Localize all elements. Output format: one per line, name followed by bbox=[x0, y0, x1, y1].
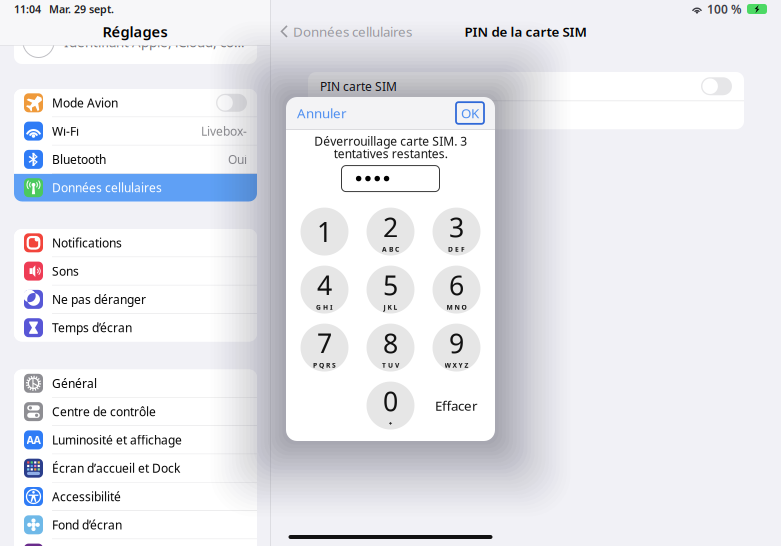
button[interactable]: 1 bbox=[300, 208, 348, 256]
staticText: Accessibilité bbox=[52, 488, 121, 504]
staticText: Wi-Fi bbox=[52, 123, 79, 139]
staticText: PIN carte SIM bbox=[320, 78, 397, 94]
staticText: 2 bbox=[383, 209, 398, 245]
staticText: Notifications bbox=[52, 235, 122, 251]
staticText: Identifiant Apple, iCloud, contenu multi… bbox=[64, 33, 247, 51]
button[interactable]: OK bbox=[456, 102, 484, 124]
staticText: OK bbox=[461, 104, 479, 122]
button[interactable]: Annuler bbox=[297, 100, 353, 126]
staticText: Annuler bbox=[297, 104, 347, 122]
staticText: Effacer bbox=[435, 397, 478, 414]
staticText: 1 bbox=[317, 214, 332, 249]
staticText: + bbox=[388, 419, 392, 428]
staticText: Luminosité et affichage bbox=[52, 432, 182, 448]
staticText: Mode Avion bbox=[52, 95, 118, 111]
staticText: D E F bbox=[448, 245, 465, 254]
staticText: Oui bbox=[228, 151, 247, 167]
staticText: J K L bbox=[383, 303, 397, 312]
button[interactable]: Notifications bbox=[14, 229, 257, 257]
button[interactable]: Écran d’accueil et Dock bbox=[14, 454, 257, 482]
button[interactable]: 7 bbox=[300, 324, 348, 372]
staticText: P Q R S bbox=[313, 361, 336, 370]
button[interactable]: 6 bbox=[432, 266, 480, 314]
staticText: 9 bbox=[449, 325, 464, 361]
button[interactable]: 4 bbox=[300, 266, 348, 314]
button[interactable]: Données cellulaires bbox=[14, 174, 257, 201]
button[interactable]: Ne pas déranger bbox=[14, 286, 257, 313]
staticText: Ne pas déranger bbox=[52, 291, 146, 307]
staticText: AA bbox=[26, 433, 40, 447]
staticText: Bluetooth bbox=[52, 151, 106, 167]
staticText: Données cellulaires bbox=[293, 23, 412, 40]
staticText: M N O bbox=[446, 303, 466, 312]
staticText: Données cellulaires bbox=[52, 180, 162, 196]
button[interactable]: AA bbox=[14, 426, 257, 454]
staticText: Livebox- bbox=[201, 123, 247, 139]
staticText: Mar. 29 sept. bbox=[49, 2, 114, 16]
staticText: A B C bbox=[382, 245, 399, 254]
button[interactable]: 9 bbox=[432, 324, 480, 372]
staticText: S bbox=[29, 543, 37, 546]
button[interactable]: 8 bbox=[366, 324, 414, 372]
staticText: 5 bbox=[383, 267, 398, 303]
staticText: Fond d’écran bbox=[52, 517, 122, 533]
staticText: Général bbox=[52, 375, 97, 391]
staticText: Centre de contrôle bbox=[52, 404, 156, 419]
staticText: G H I bbox=[316, 303, 333, 312]
staticText: Écran d’accueil et Dock bbox=[52, 460, 180, 476]
button[interactable]: Temps d’écran bbox=[14, 314, 257, 341]
staticText: W X Y Z bbox=[444, 361, 468, 370]
staticText: 6 bbox=[449, 267, 464, 303]
staticText: PIN de la carte SIM bbox=[464, 23, 586, 40]
staticText: Sons bbox=[52, 263, 79, 279]
button[interactable]: Accessibilité bbox=[14, 483, 257, 510]
staticText: 3 bbox=[449, 209, 464, 245]
button[interactable]: Centre de contrôle bbox=[14, 398, 257, 425]
button[interactable]: Fond d’écran bbox=[14, 511, 257, 539]
staticText: 11:04 bbox=[14, 2, 41, 16]
staticText: Temps d’écran bbox=[52, 320, 132, 336]
button[interactable]: 2 bbox=[366, 208, 414, 256]
staticText: 7 bbox=[317, 325, 332, 361]
button[interactable]: 0 bbox=[366, 382, 414, 430]
button[interactable]: Mode Avion bbox=[14, 89, 257, 117]
staticText: 100 % bbox=[707, 1, 742, 17]
button[interactable]: Sons bbox=[14, 257, 257, 285]
staticText: Déverrouillage carte SIM. 3 tentatives r… bbox=[314, 133, 467, 162]
button[interactable]: Bluetooth bbox=[14, 146, 257, 173]
staticText: 4 bbox=[317, 267, 332, 303]
staticText: T U V bbox=[382, 361, 399, 370]
staticText: 0 bbox=[383, 383, 398, 419]
staticText: 8 bbox=[383, 325, 398, 361]
button[interactable]: S bbox=[14, 539, 257, 546]
button[interactable]: Wi-Fi bbox=[14, 117, 257, 145]
staticText: Réglages bbox=[102, 22, 167, 41]
button[interactable]: 3 bbox=[432, 208, 480, 256]
button[interactable]: Général bbox=[14, 369, 257, 397]
button[interactable]: PIN carte SIM bbox=[308, 72, 744, 100]
button[interactable]: Effacer bbox=[432, 382, 480, 430]
button[interactable]: 5 bbox=[366, 266, 414, 314]
button[interactable]: Données cellulaires bbox=[280, 23, 412, 40]
